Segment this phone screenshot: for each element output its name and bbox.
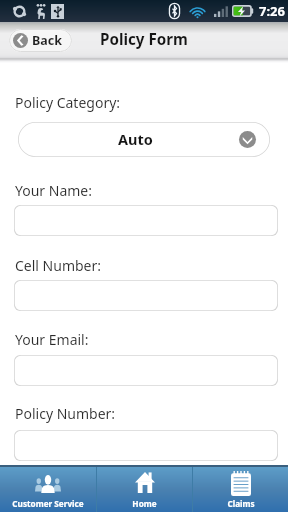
staticText: Claims <box>227 498 255 509</box>
button[interactable]: Back <box>9 29 72 52</box>
staticText: Cell Number: <box>15 256 102 275</box>
button[interactable] <box>14 205 278 236</box>
staticText: Policy Category: <box>15 93 121 112</box>
button[interactable]: Home <box>97 467 192 512</box>
staticText: Auto <box>118 129 153 149</box>
button[interactable] <box>14 355 278 386</box>
button[interactable] <box>14 280 278 311</box>
button[interactable]: Customer Service <box>0 467 96 512</box>
staticText: Policy Form <box>100 29 188 50</box>
button[interactable] <box>14 430 278 461</box>
staticText: Home <box>132 498 157 509</box>
button[interactable]: Claims <box>193 467 288 512</box>
staticText: Back <box>32 32 63 49</box>
staticText: Policy Number: <box>15 404 116 423</box>
other: Expand policy category <box>239 131 256 148</box>
staticText: Your Name: <box>15 181 92 200</box>
button[interactable]: Auto <box>18 122 270 157</box>
staticText: Customer Service <box>12 498 84 509</box>
staticText: Your Email: <box>15 330 89 349</box>
staticText: 7:26 <box>259 2 285 20</box>
